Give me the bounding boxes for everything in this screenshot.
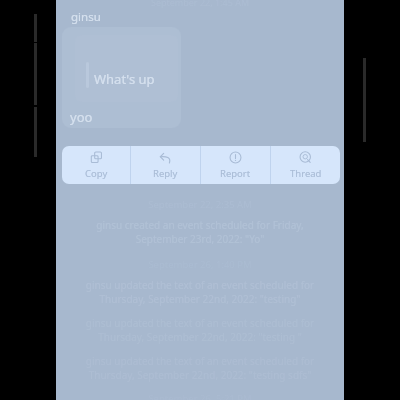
button[interactable]: Thread: [271, 146, 340, 184]
staticText: Reply: [153, 167, 178, 180]
staticText: Copy: [85, 167, 108, 180]
staticText: yoo: [70, 108, 93, 126]
staticText: ginsu: [71, 9, 101, 25]
button[interactable]: Report: [201, 146, 270, 184]
staticText: Thread: [290, 167, 322, 180]
staticText: What's up: [94, 70, 155, 88]
staticText: Report: [220, 167, 251, 180]
button[interactable]: Reply: [131, 146, 200, 184]
button[interactable]: Copy: [62, 146, 130, 184]
button[interactable]: [62, 27, 181, 128]
